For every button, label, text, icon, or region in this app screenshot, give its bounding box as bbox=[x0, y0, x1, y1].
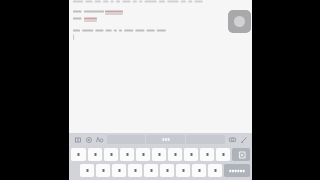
button[interactable]: Loading bbox=[228, 10, 251, 33]
button[interactable] bbox=[168, 148, 182, 161]
button[interactable] bbox=[136, 148, 150, 161]
button[interactable] bbox=[71, 148, 86, 161]
button[interactable] bbox=[146, 135, 185, 144]
button[interactable] bbox=[112, 164, 126, 177]
button[interactable] bbox=[128, 164, 142, 177]
button[interactable]: Markup bbox=[238, 134, 249, 145]
button[interactable]: Backspace bbox=[232, 148, 250, 161]
button[interactable] bbox=[224, 164, 250, 177]
button[interactable] bbox=[176, 164, 190, 177]
button[interactable]: Format bbox=[83, 134, 94, 145]
button[interactable] bbox=[104, 148, 118, 161]
button[interactable] bbox=[80, 164, 94, 177]
button[interactable]: Undo bbox=[72, 134, 83, 145]
button[interactable] bbox=[152, 148, 166, 161]
button[interactable] bbox=[96, 164, 110, 177]
button[interactable]: Camera bbox=[227, 134, 238, 145]
button[interactable] bbox=[192, 164, 206, 177]
button[interactable] bbox=[88, 148, 102, 161]
button[interactable]: Text size bbox=[94, 134, 105, 145]
button[interactable] bbox=[208, 164, 222, 177]
button[interactable] bbox=[184, 148, 198, 161]
button[interactable] bbox=[120, 148, 134, 161]
button[interactable] bbox=[144, 164, 158, 177]
button[interactable] bbox=[200, 148, 214, 161]
button[interactable] bbox=[216, 148, 230, 161]
button[interactable] bbox=[160, 164, 174, 177]
